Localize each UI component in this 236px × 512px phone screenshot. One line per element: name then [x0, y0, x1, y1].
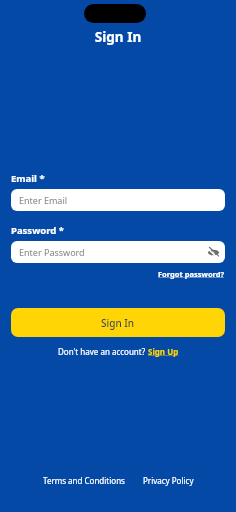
staticText: Enter Password: [19, 246, 85, 258]
staticText: Sign In: [0, 28, 236, 46]
button[interactable]: Sign Up: [148, 346, 179, 357]
staticText: Don't have an account?: [58, 346, 148, 357]
button[interactable]: [208, 247, 219, 258]
button[interactable]: Enter Password: [11, 241, 225, 263]
button[interactable]: Forgot password?: [158, 269, 225, 279]
staticText: Email *: [11, 172, 45, 185]
button[interactable]: Enter Email: [11, 189, 225, 211]
staticText: Sign In: [101, 316, 135, 330]
staticText: Enter Email: [19, 194, 68, 206]
button[interactable]: Terms and Conditions: [43, 475, 125, 486]
button[interactable]: Privacy Policy: [143, 475, 194, 486]
staticText: Password *: [11, 224, 64, 237]
button[interactable]: Sign In: [11, 308, 225, 337]
